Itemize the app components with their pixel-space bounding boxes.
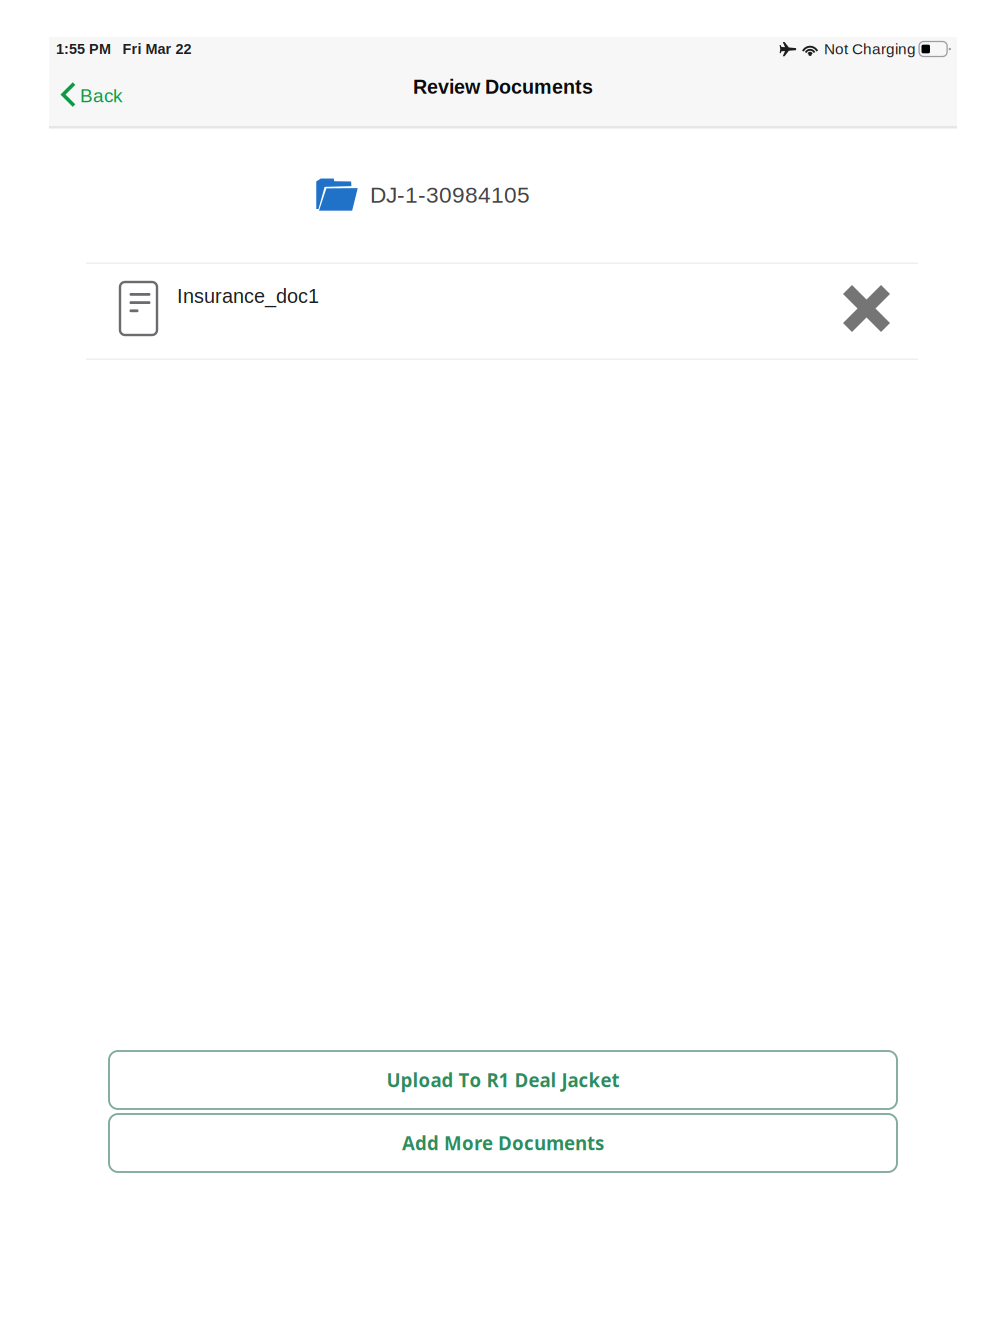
staticText: Add More Documents xyxy=(402,1130,604,1156)
staticText: Back xyxy=(80,85,122,106)
staticText: Upload To R1 Deal Jacket xyxy=(386,1067,619,1093)
button[interactable]: Upload To R1 Deal Jacket xyxy=(109,1051,897,1109)
staticText: 1:55 PM xyxy=(56,41,111,57)
button[interactable]: Remove Insurance_doc1 xyxy=(827,264,918,353)
staticText: Not Charging xyxy=(824,40,916,57)
staticText: Fri Mar 22 xyxy=(122,41,191,57)
staticText: Review Documents xyxy=(413,76,593,98)
staticText: Insurance_doc1 xyxy=(177,285,319,307)
staticText: DJ-1-30984105 xyxy=(370,182,530,208)
button[interactable]: Back xyxy=(49,61,138,121)
button[interactable]: Insurance_doc1 xyxy=(86,264,826,358)
button[interactable]: Add More Documents xyxy=(109,1114,897,1172)
